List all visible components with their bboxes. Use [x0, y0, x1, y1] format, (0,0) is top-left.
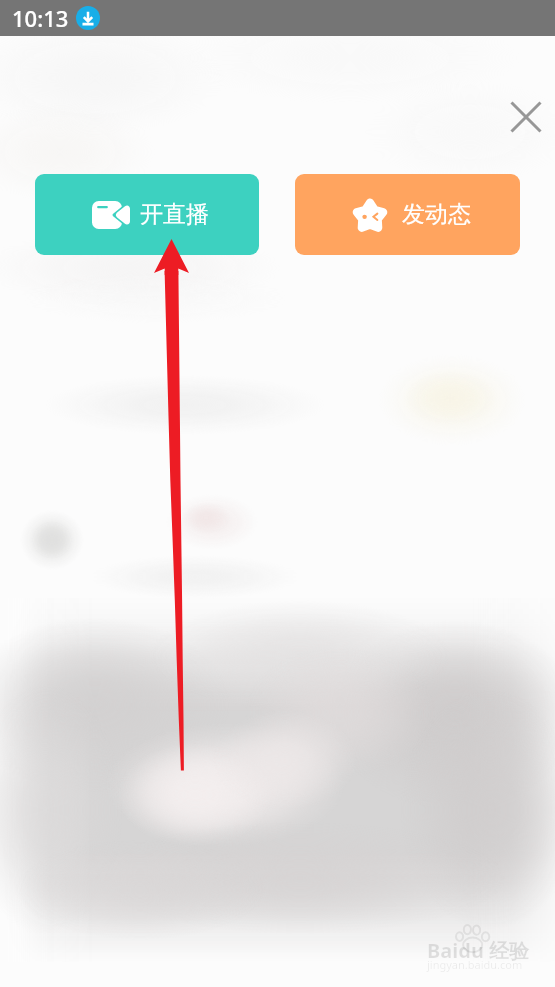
staticText: Baidu 经验 — [427, 937, 530, 964]
staticText: 10:13 — [12, 3, 69, 33]
staticText: 发动态 — [402, 200, 471, 229]
button[interactable]: 开直播 — [35, 174, 259, 255]
staticText: 开直播 — [140, 200, 209, 229]
button[interactable]: Close — [498, 89, 554, 145]
staticText: jingyan.baidu.com — [427, 957, 523, 972]
button[interactable]: 发动态 — [295, 174, 520, 255]
